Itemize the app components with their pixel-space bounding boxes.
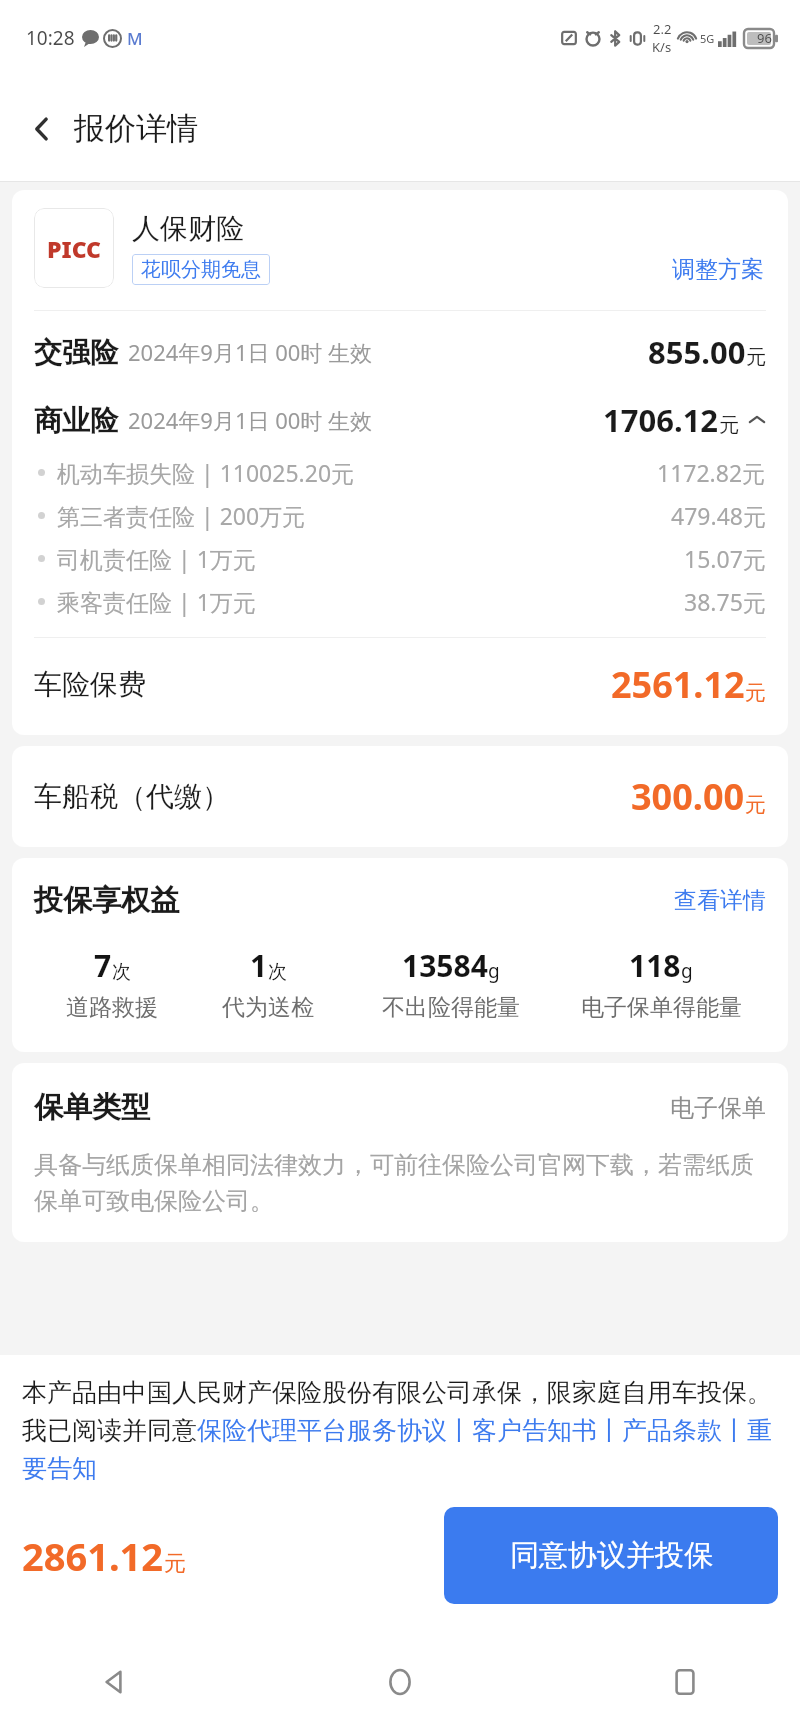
staticText: 元 [719, 413, 739, 438]
button[interactable]: 调整方案 [672, 255, 766, 284]
staticText: 道路救援 [66, 993, 158, 1022]
staticText: 人保财险 [132, 211, 244, 246]
staticText: 1 [250, 945, 268, 986]
staticText: 300.00 [631, 772, 745, 821]
staticText: 花呗分期免息 [141, 257, 261, 282]
staticText: 7 [94, 945, 112, 986]
staticText: 不出险得能量 [382, 993, 520, 1022]
button[interactable]: Back [80, 1647, 150, 1717]
staticText: 10:28 [26, 25, 75, 51]
staticText: 调整方案 [672, 255, 764, 284]
button[interactable]: 交强险 [34, 331, 766, 373]
staticText: M [127, 27, 143, 50]
staticText: 2861.12 [22, 1530, 164, 1582]
button[interactable]: 商业险 [34, 399, 766, 441]
staticText: 2561.12 [611, 660, 745, 709]
button[interactable]: Recents [650, 1647, 720, 1717]
staticText: 电子保单 [670, 1093, 766, 1123]
staticText: 机动车损失险 | 110025.20元 [57, 457, 355, 488]
staticText: 保单类型 [34, 1089, 150, 1126]
staticText: 车险保费 [34, 667, 146, 702]
button[interactable]: 查看详情 [674, 886, 766, 915]
staticText: 元 [164, 1550, 186, 1578]
staticText: 交强险 [34, 335, 118, 370]
button[interactable]: Home [365, 1647, 435, 1717]
staticText: 元 [746, 345, 766, 370]
button[interactable]: 同意协议并投保 [444, 1507, 778, 1604]
staticText: PICC [47, 233, 102, 264]
button[interactable]: 本产品由中国人民财产保险股份有限公司承保，限家庭自用车投保。我已阅读并同意保险代… [22, 1377, 778, 1485]
staticText: K/s [652, 38, 672, 56]
staticText: 96 [757, 29, 772, 47]
staticText: 855.00 [648, 331, 746, 373]
staticText: 具备与纸质保单相同法律效力，可前往保险公司官网下载，若需纸质保单可致电保险公司。 [34, 1150, 766, 1216]
staticText: 司机责任险 | 1万元 [57, 543, 256, 574]
staticText: 元 [745, 792, 766, 818]
staticText: 次 [268, 960, 287, 984]
staticText: 元 [745, 680, 766, 706]
staticText: 乘客责任险 | 1万元 [57, 586, 256, 617]
staticText: 投保享权益 [34, 882, 179, 919]
staticText: 代为送检 [222, 993, 314, 1022]
staticText: 次 [112, 960, 131, 984]
staticText: 第三者责任险 | 200万元 [57, 500, 306, 531]
staticText: 479.48元 [671, 500, 766, 531]
staticText: g [488, 958, 500, 984]
staticText: 5G [700, 31, 715, 46]
staticText: 13584 [402, 945, 488, 986]
staticText: 报价详情 [74, 109, 198, 148]
button[interactable]: Back [14, 101, 70, 157]
button[interactable]: 花呗分期免息 [141, 257, 261, 282]
staticText: 电子保单得能量 [581, 993, 742, 1022]
staticText: 同意协议并投保 [510, 1537, 713, 1574]
staticText: 商业险 [34, 403, 118, 438]
staticText: 2024年9月1日 00时 生效 [128, 337, 373, 367]
staticText: 38.75元 [684, 586, 766, 617]
staticText: 2.2 [653, 20, 672, 38]
staticText: 1172.82元 [657, 457, 766, 488]
staticText: 查看详情 [674, 886, 766, 915]
staticText: g [681, 958, 693, 984]
staticText: 车船税（代缴） [34, 779, 230, 814]
staticText: 2024年9月1日 00时 生效 [128, 405, 373, 435]
staticText: 15.07元 [684, 543, 766, 574]
staticText: 118 [629, 945, 681, 986]
staticText: 1706.12 [603, 399, 719, 441]
